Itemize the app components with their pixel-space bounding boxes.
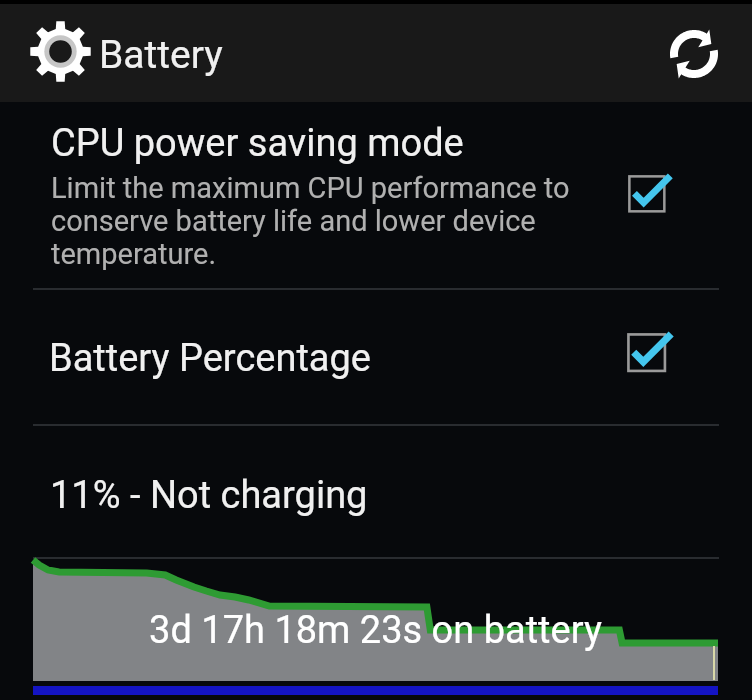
staticText: 3d 17h 18m 23s on battery bbox=[149, 608, 602, 653]
staticText: Battery bbox=[99, 32, 223, 78]
staticText: Limit the maximum CPU performance to con… bbox=[51, 171, 596, 271]
staticText: Battery Percentage bbox=[49, 336, 371, 381]
button[interactable]: Checkbox, checked bbox=[628, 175, 674, 221]
staticText: CPU power saving mode bbox=[51, 121, 464, 166]
button[interactable]: 11% - Not charging bbox=[0, 425, 752, 700]
button[interactable]: CPU power saving mode bbox=[0, 102, 752, 288]
button[interactable]: Battery Percentage bbox=[0, 289, 752, 424]
button[interactable]: Refresh bbox=[650, 10, 738, 98]
staticText: 11% - Not charging bbox=[50, 473, 368, 518]
button[interactable]: Checkbox, checked bbox=[627, 333, 675, 381]
